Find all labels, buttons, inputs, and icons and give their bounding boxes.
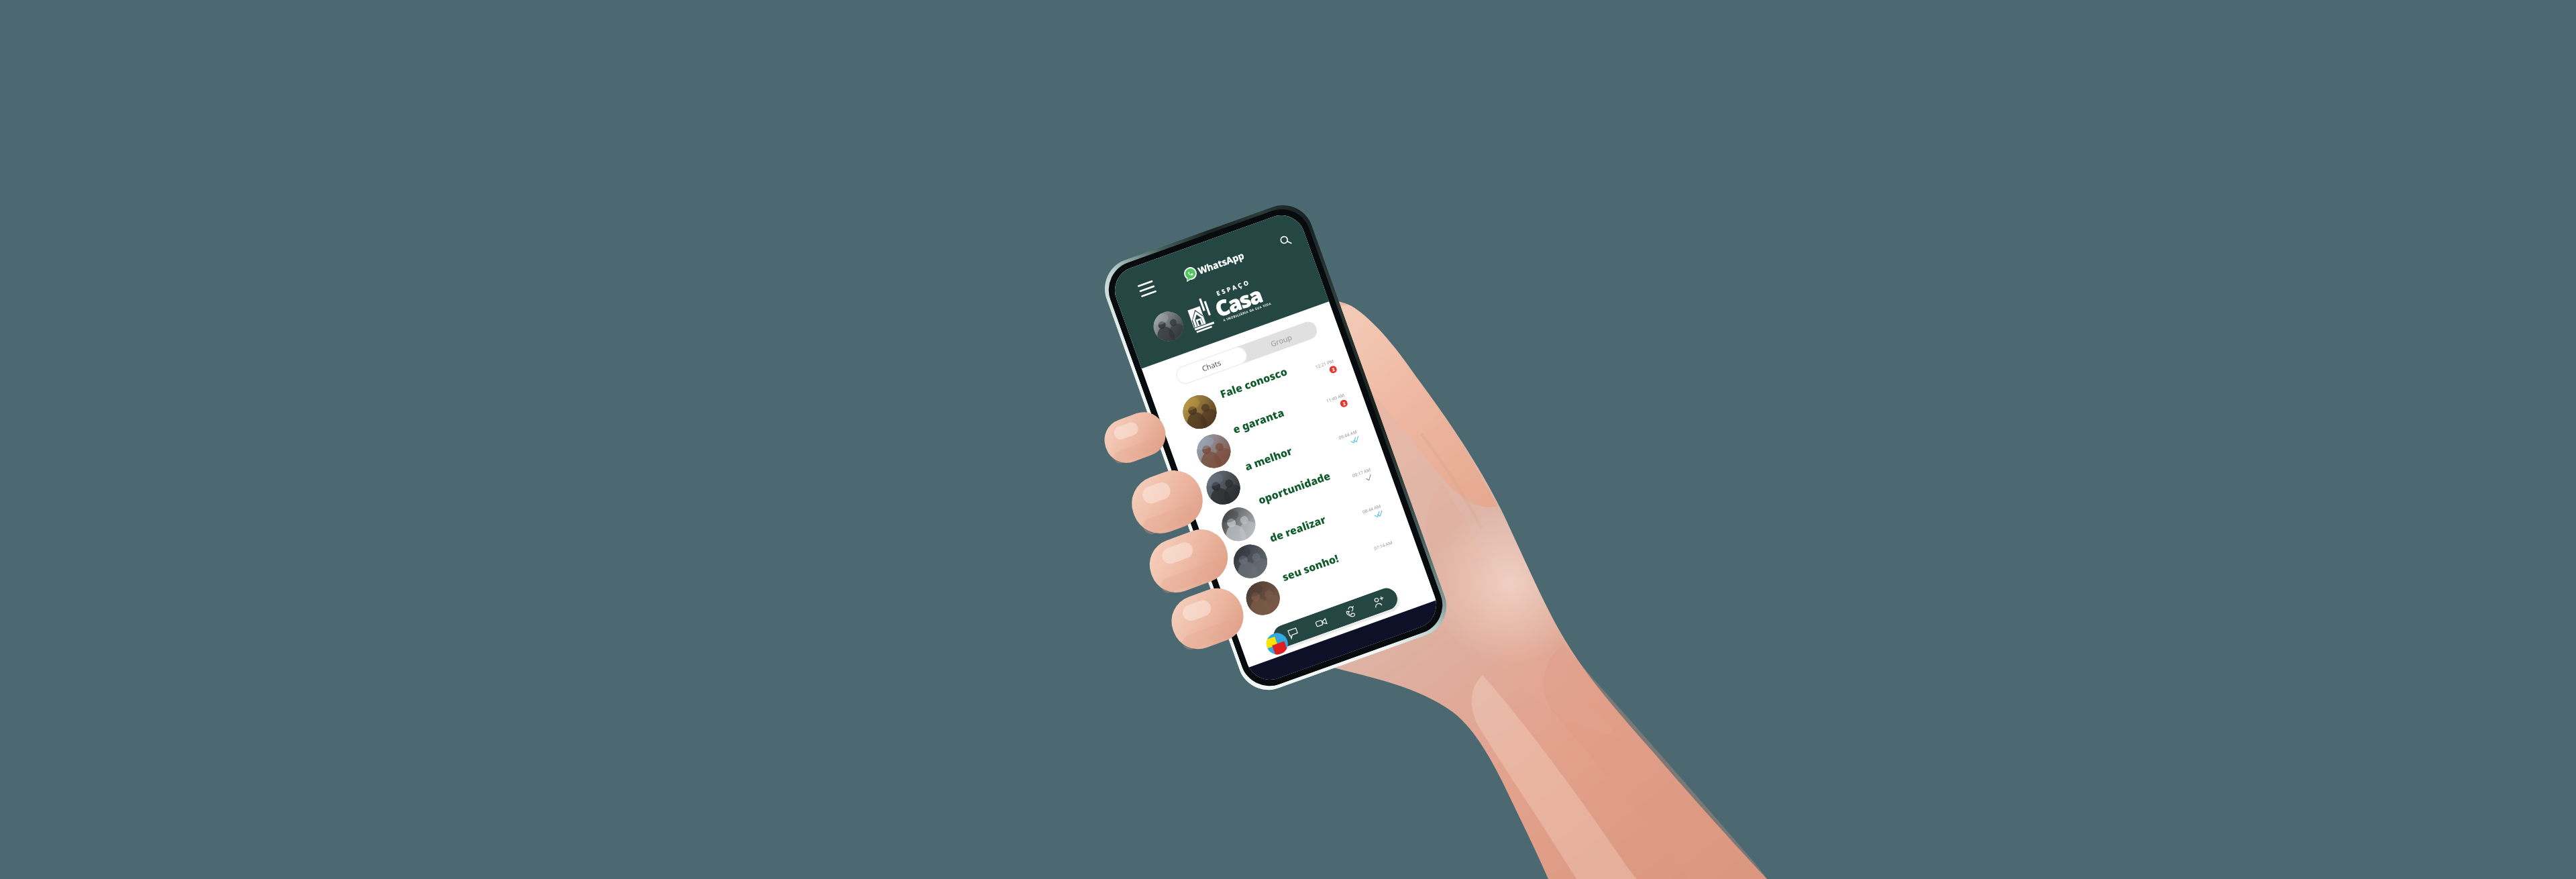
- button[interactable]: [1178, 391, 1221, 433]
- staticText: a melhor: [1243, 443, 1294, 474]
- button[interactable]: Calls: [1335, 598, 1364, 627]
- staticText: Fale conosco: [1218, 364, 1289, 402]
- button[interactable]: e garanta: [1231, 405, 1286, 437]
- button[interactable]: [1149, 307, 1187, 345]
- button[interactable]: [1217, 503, 1260, 546]
- staticText: e garanta: [1231, 405, 1286, 437]
- staticText: 09:17 AM: [1351, 467, 1372, 479]
- button[interactable]: seu sonho!: [1280, 551, 1341, 585]
- staticText: Chats: [1200, 357, 1223, 373]
- staticText: 07:14 AM: [1373, 539, 1394, 552]
- button[interactable]: Chats: [1278, 619, 1307, 647]
- staticText: ESPAÇO: [1215, 277, 1252, 297]
- staticText: Casa: [1211, 280, 1266, 324]
- staticText: 2: [1342, 401, 1346, 407]
- staticText: 11:40 AM: [1325, 392, 1346, 404]
- staticText: WhatsApp: [1196, 249, 1246, 277]
- button[interactable]: Menu: [1137, 280, 1157, 297]
- button[interactable]: [1229, 540, 1272, 583]
- staticText: 2: [1331, 367, 1336, 373]
- button[interactable]: Video call: [1306, 608, 1335, 637]
- staticText: Group: [1269, 332, 1293, 349]
- button[interactable]: [1192, 430, 1235, 473]
- button[interactable]: Add contact: [1364, 588, 1393, 616]
- staticText: 09:44 AM: [1338, 429, 1358, 441]
- button[interactable]: [1202, 466, 1245, 509]
- staticText: oportunidade: [1256, 468, 1332, 508]
- staticText: de realizar: [1268, 512, 1328, 546]
- button[interactable]: de realizar: [1268, 512, 1328, 546]
- staticText: 08:44 AM: [1362, 503, 1382, 515]
- button[interactable]: a melhor: [1243, 443, 1294, 474]
- staticText: 12:21 PM: [1315, 358, 1335, 370]
- button[interactable]: Chats: [1174, 344, 1249, 386]
- staticText: seu sonho!: [1280, 551, 1341, 585]
- button[interactable]: [1242, 577, 1284, 620]
- button[interactable]: Group: [1243, 319, 1319, 361]
- button[interactable]: Search: [1274, 229, 1296, 251]
- button[interactable]: Fale conosco: [1218, 364, 1289, 402]
- button[interactable]: oportunidade: [1256, 468, 1332, 508]
- staticText: A IMOBILIÁRIA DA SUA VIDA: [1223, 302, 1272, 323]
